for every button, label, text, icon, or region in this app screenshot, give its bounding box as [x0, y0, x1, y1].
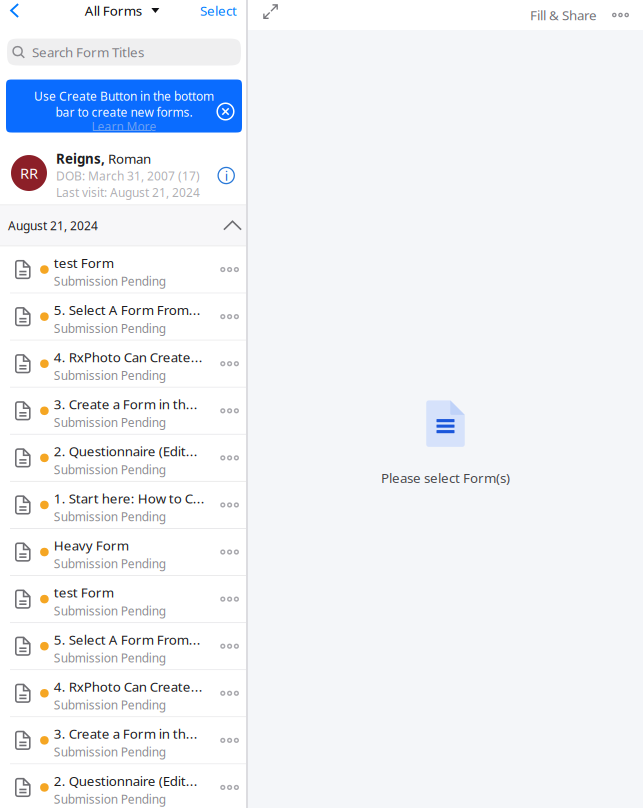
staticText: i — [225, 167, 228, 184]
staticText: Submission Pending — [54, 320, 166, 336]
staticText: Submission Pending — [54, 650, 166, 666]
staticText: 2. Questionnaire (Edit... — [54, 772, 198, 790]
staticText: Search Form Titles — [32, 43, 144, 61]
button[interactable]: More actions for 5. Select A Form From..… — [210, 623, 246, 669]
staticText: Please select Form(s) — [381, 469, 510, 487]
button[interactable]: More options — [597, 1, 643, 29]
staticText: All Forms — [85, 2, 142, 19]
button[interactable]: More actions for 4. RxPhoto Can Create..… — [210, 670, 246, 716]
button[interactable]: More actions for 4. RxPhoto Can Create..… — [210, 341, 246, 387]
staticText: Submission Pending — [54, 509, 166, 524]
button[interactable]: More actions for Heavy Form — [210, 529, 246, 575]
button[interactable]: RR — [0, 141, 246, 204]
button[interactable]: Use Create Button in the bottom — [6, 79, 242, 132]
button[interactable]: All Forms — [70, 0, 159, 24]
button[interactable]: More actions for 2. Questionnaire (Edit.… — [210, 435, 246, 481]
button[interactable]: August 21, 2024 — [0, 205, 246, 245]
staticText: bar to create new forms. — [55, 104, 192, 120]
button[interactable]: Fill & Share — [530, 1, 597, 29]
button[interactable]: 1. Start here: How to C... — [0, 482, 246, 528]
staticText: Select — [200, 2, 237, 19]
button[interactable]: Back — [0, 0, 29, 24]
staticText: Heavy Form — [54, 536, 129, 554]
staticText: 2. Questionnaire (Edit... — [54, 442, 198, 460]
staticText: 4. RxPhoto Can Create... — [54, 348, 203, 366]
staticText: Submission Pending — [54, 791, 166, 807]
button[interactable]: 3. Create a Form in th... — [0, 388, 246, 434]
staticText: Submission Pending — [54, 414, 166, 430]
staticText: DOB: March 31, 2007 (17) — [56, 168, 200, 184]
button[interactable]: 4. RxPhoto Can Create... — [0, 670, 246, 716]
staticText: 1. Start here: How to C... — [54, 489, 205, 507]
staticText: 3. Create a Form in th... — [54, 725, 198, 742]
button[interactable]: test Form — [0, 576, 246, 622]
staticText: test Form — [54, 254, 114, 272]
staticText: Submission Pending — [54, 461, 166, 477]
button[interactable]: 4. RxPhoto Can Create... — [0, 341, 246, 387]
staticText: test Form — [54, 583, 114, 601]
staticText: Submission Pending — [54, 744, 166, 760]
staticText: Fill & Share — [530, 6, 597, 24]
button[interactable]: Expand — [248, 0, 278, 30]
staticText: Roman — [105, 150, 151, 167]
button[interactable]: More actions for 3. Create a Form in th.… — [210, 388, 246, 434]
button[interactable]: Dismiss tip — [210, 79, 242, 132]
staticText: 5. Select A Form From... — [54, 631, 201, 648]
staticText: RR — [20, 163, 38, 183]
button[interactable]: More actions for test Form — [210, 576, 246, 622]
button[interactable]: More actions for 2. Questionnaire (Edit.… — [210, 764, 246, 808]
button[interactable]: test Form — [0, 246, 246, 293]
staticText: 4. RxPhoto Can Create... — [54, 678, 203, 695]
button[interactable]: More actions for 3. Create a Form in th.… — [210, 717, 246, 763]
button[interactable]: 3. Create a Form in th... — [0, 717, 246, 763]
staticText: Submission Pending — [54, 273, 166, 289]
staticText: 3. Create a Form in th... — [54, 395, 198, 413]
staticText: Submission Pending — [54, 556, 166, 572]
button[interactable]: 5. Select A Form From... — [0, 623, 246, 669]
staticText: Last visit: August 21, 2024 — [56, 184, 200, 200]
staticText: Submission Pending — [54, 367, 166, 383]
staticText: Reigns, — [56, 150, 105, 167]
button[interactable]: 2. Questionnaire (Edit... — [0, 764, 246, 808]
button[interactable]: More actions for 5. Select A Form From..… — [210, 294, 246, 340]
staticText: Submission Pending — [54, 603, 166, 619]
staticText: Learn More — [91, 118, 156, 134]
staticText: 5. Select A Form From... — [54, 301, 201, 319]
button[interactable]: Heavy Form — [0, 529, 246, 575]
button[interactable]: 5. Select A Form From... — [0, 294, 246, 340]
button[interactable]: Select — [200, 0, 246, 24]
button[interactable]: More actions for test Form — [210, 246, 246, 293]
button[interactable]: 2. Questionnaire (Edit... — [0, 435, 246, 481]
button[interactable]: More actions for 1. Start here: How to C… — [210, 482, 246, 528]
staticText: August 21, 2024 — [8, 218, 98, 233]
staticText: Submission Pending — [54, 697, 166, 713]
staticText: Use Create Button in the bottom — [34, 88, 214, 104]
button[interactable]: Search Form Titles — [7, 38, 241, 65]
